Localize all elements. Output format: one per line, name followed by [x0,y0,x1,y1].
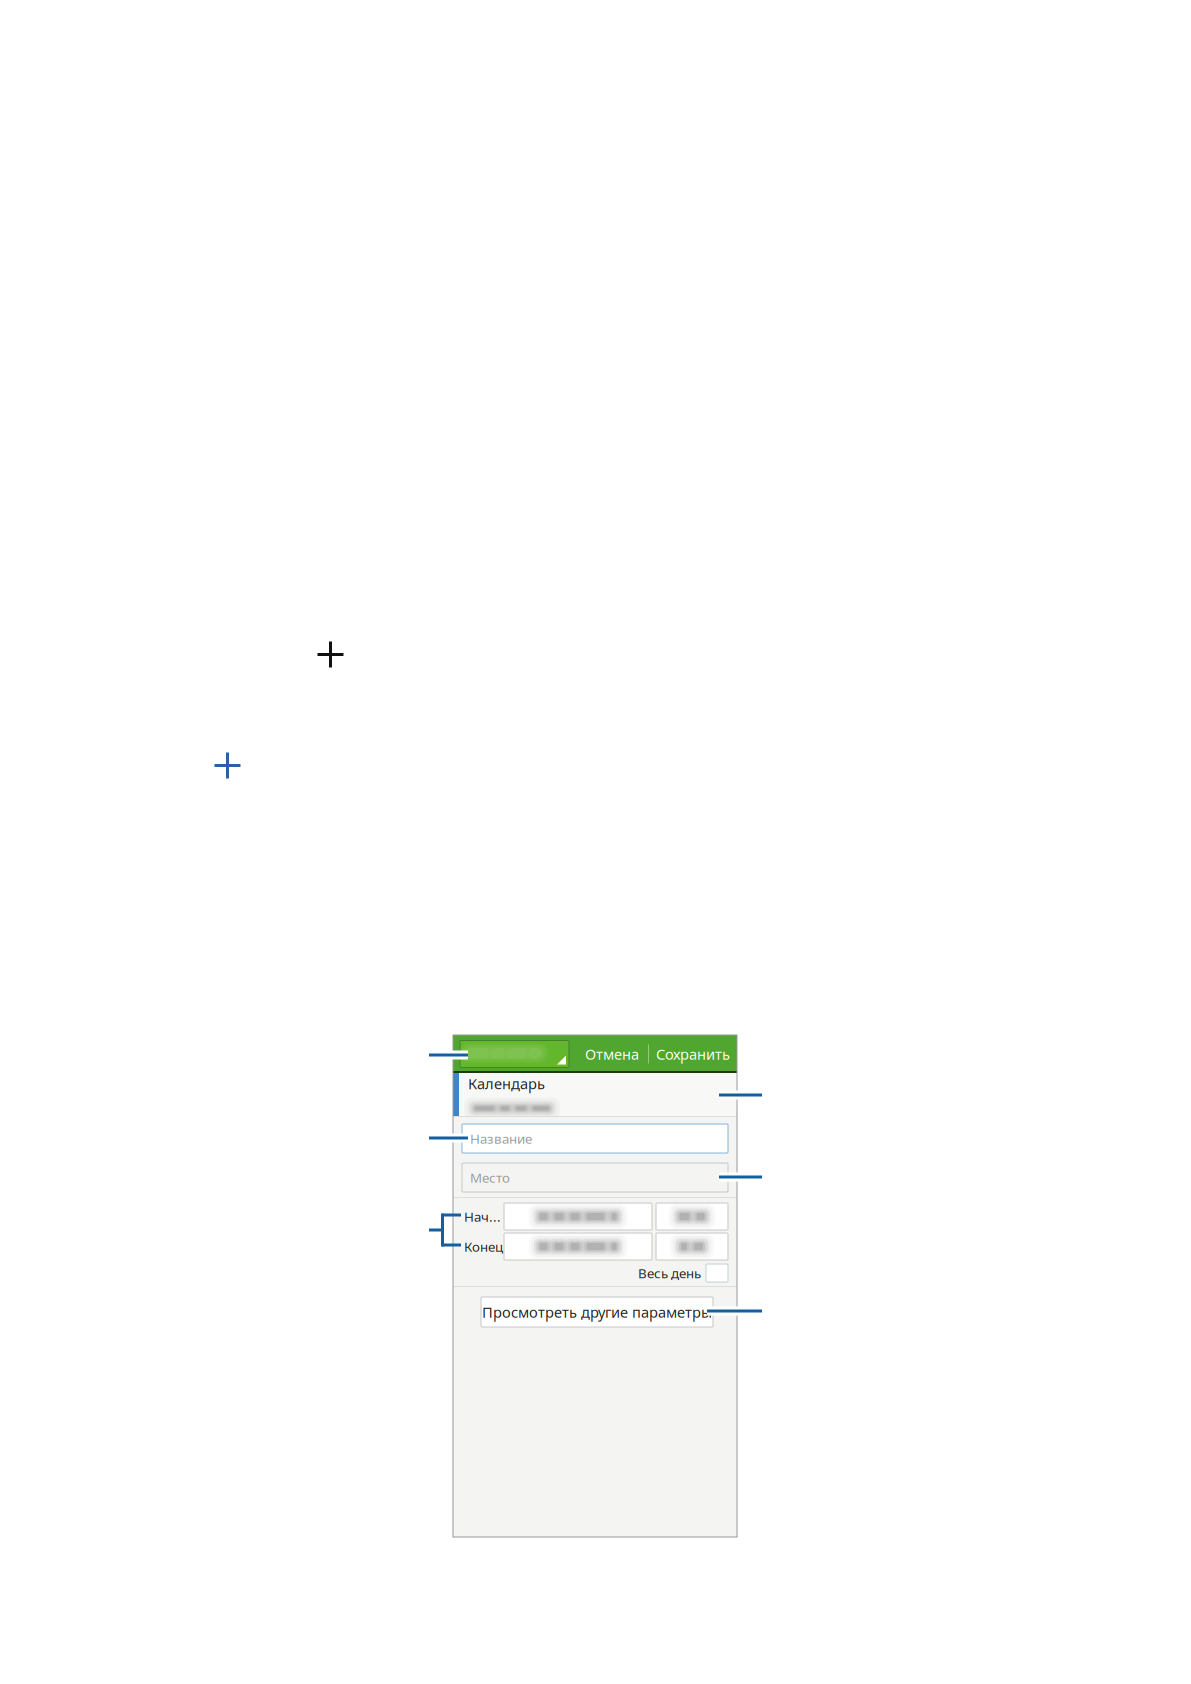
staticText: Просмотреть другие параметры [482,1302,712,1322]
button[interactable]: Сохранить [649,1035,737,1072]
button[interactable]: Весь день [706,1264,728,1282]
button[interactable]: Дата [504,1233,652,1260]
staticText: Весь день [638,1264,701,1282]
staticText: Нач... [464,1208,501,1225]
button[interactable]: Просмотреть другие параметры [481,1297,713,1327]
button[interactable]: Время [656,1203,728,1230]
button[interactable]: Дата [504,1203,652,1230]
button[interactable]: Отмена [576,1035,648,1072]
button[interactable]: Название [462,1124,728,1153]
staticText: Место [470,1169,510,1186]
button[interactable]: Календарь [453,1073,737,1116]
button[interactable]: Место [462,1163,728,1192]
staticText: Отмена [585,1044,639,1064]
button[interactable]: Выбрать календарь [460,1040,569,1067]
staticText: Название [470,1130,532,1147]
button[interactable]: Время [656,1233,728,1260]
staticText: Конец [464,1238,503,1255]
staticText: Сохранить [656,1044,730,1064]
staticText: Календарь [468,1074,545,1093]
